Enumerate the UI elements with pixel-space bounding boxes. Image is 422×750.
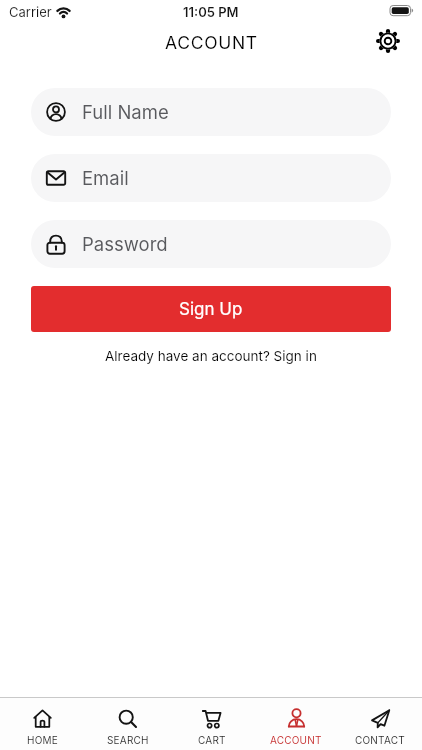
button[interactable]: CONTACT xyxy=(338,698,422,750)
staticText: HOME xyxy=(27,734,58,746)
button[interactable] xyxy=(372,25,404,57)
button[interactable]: SEARCH xyxy=(85,698,170,750)
button[interactable]: Full Name xyxy=(31,88,391,136)
staticText: Carrier xyxy=(9,4,52,20)
staticText: SEARCH xyxy=(107,734,149,746)
staticText: ACCOUNT xyxy=(165,32,258,53)
button[interactable]: Already have an account? Sign in xyxy=(105,348,317,364)
button[interactable]: ACCOUNT xyxy=(254,698,338,750)
button[interactable]: HOME xyxy=(0,698,85,750)
button[interactable]: CART xyxy=(170,698,254,750)
staticText: Sign Up xyxy=(179,299,243,320)
staticText: Password xyxy=(82,233,168,255)
staticText: ACCOUNT xyxy=(270,734,322,746)
button[interactable]: Email xyxy=(31,154,391,202)
staticText: CART xyxy=(198,734,226,746)
button[interactable]: Password xyxy=(31,220,391,268)
button[interactable]: Sign Up xyxy=(31,286,391,332)
staticText: CONTACT xyxy=(355,734,405,746)
staticText: 11:05 PM xyxy=(183,4,239,20)
staticText: Full Name xyxy=(82,101,169,123)
staticText: Email xyxy=(82,167,129,189)
